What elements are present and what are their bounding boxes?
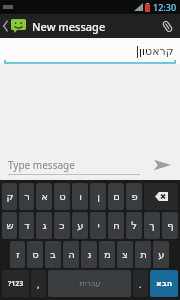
staticText: א — [41, 191, 48, 203]
staticText: ו — [79, 191, 82, 203]
staticText: ח — [113, 220, 120, 232]
button[interactable]: ?123 — [2, 270, 29, 297]
button[interactable]: ט — [54, 183, 70, 210]
staticText: ק — [6, 191, 14, 203]
staticText: י — [97, 220, 100, 232]
staticText: כ — [59, 220, 65, 232]
button[interactable]: נ — [81, 241, 97, 268]
staticText: ד — [24, 220, 30, 232]
button[interactable]: י — [90, 212, 106, 239]
staticText: ט — [59, 191, 66, 203]
button[interactable]: Type message — [8, 154, 140, 175]
staticText: ף — [167, 220, 174, 232]
staticText: ן — [97, 191, 100, 203]
button[interactable]: פ — [126, 183, 142, 210]
staticText: נ — [87, 249, 92, 261]
staticText: ם — [113, 191, 120, 203]
staticText: ג — [42, 220, 47, 232]
staticText: ז — [16, 249, 20, 261]
button[interactable]: ז — [10, 241, 25, 268]
button[interactable]: ש — [2, 212, 17, 239]
button[interactable]: הבא — [150, 270, 178, 297]
button[interactable]: ח — [108, 212, 124, 239]
button[interactable]: ס — [27, 241, 43, 268]
staticText: ש — [6, 220, 14, 232]
button[interactable]: ר — [19, 183, 34, 210]
button[interactable]: Backspace — [144, 183, 178, 210]
staticText: ס — [32, 249, 39, 261]
staticText: ב — [50, 249, 56, 261]
button[interactable]: כ — [54, 212, 70, 239]
staticText: ה — [68, 249, 75, 261]
staticText: 12:30 — [153, 1, 177, 13]
button[interactable]: ו — [72, 183, 88, 210]
staticText: מ — [104, 249, 111, 261]
staticText: צ — [122, 249, 128, 261]
staticText: פ — [131, 191, 138, 203]
button[interactable]: ע — [72, 212, 88, 239]
button[interactable]: Back — [0, 14, 28, 38]
button[interactable]: ף — [162, 212, 178, 239]
button[interactable]: מ — [99, 241, 115, 268]
staticText: Type message — [8, 158, 75, 172]
staticText: ?123 — [8, 279, 24, 289]
staticText: ת — [140, 249, 147, 261]
button[interactable]: ך — [144, 212, 160, 239]
button[interactable]: Send — [144, 150, 180, 180]
staticText: ך — [149, 220, 155, 232]
button[interactable]: ה — [63, 241, 79, 268]
staticText: עברית — [79, 279, 101, 288]
button[interactable]: צ — [117, 241, 133, 268]
button[interactable]: ע — [153, 241, 169, 268]
staticText: , — [37, 278, 40, 290]
button[interactable]: ב — [45, 241, 61, 268]
button[interactable]: Comma — [31, 270, 46, 297]
staticText: ע — [158, 249, 165, 261]
button[interactable]: קראטון — [6, 45, 174, 58]
button[interactable]: ג — [36, 212, 52, 239]
staticText: ל — [131, 220, 137, 232]
button[interactable]: ד — [19, 212, 34, 239]
button[interactable]: ן — [90, 183, 106, 210]
button[interactable]: Period — [133, 270, 148, 297]
button[interactable]: ת — [135, 241, 151, 268]
button[interactable]: ם — [108, 183, 124, 210]
button[interactable]: Space — [48, 270, 131, 297]
button[interactable]: Attach — [154, 14, 180, 38]
staticText: ר — [24, 191, 30, 203]
button[interactable]: ל — [126, 212, 142, 239]
button[interactable]: א — [36, 183, 52, 210]
staticText: . — [139, 278, 142, 290]
staticText: New message — [32, 19, 106, 34]
staticText: קראטון — [139, 45, 174, 58]
button[interactable]: ק — [2, 183, 17, 210]
staticText: הבא — [156, 279, 173, 288]
staticText: ע — [77, 220, 84, 232]
